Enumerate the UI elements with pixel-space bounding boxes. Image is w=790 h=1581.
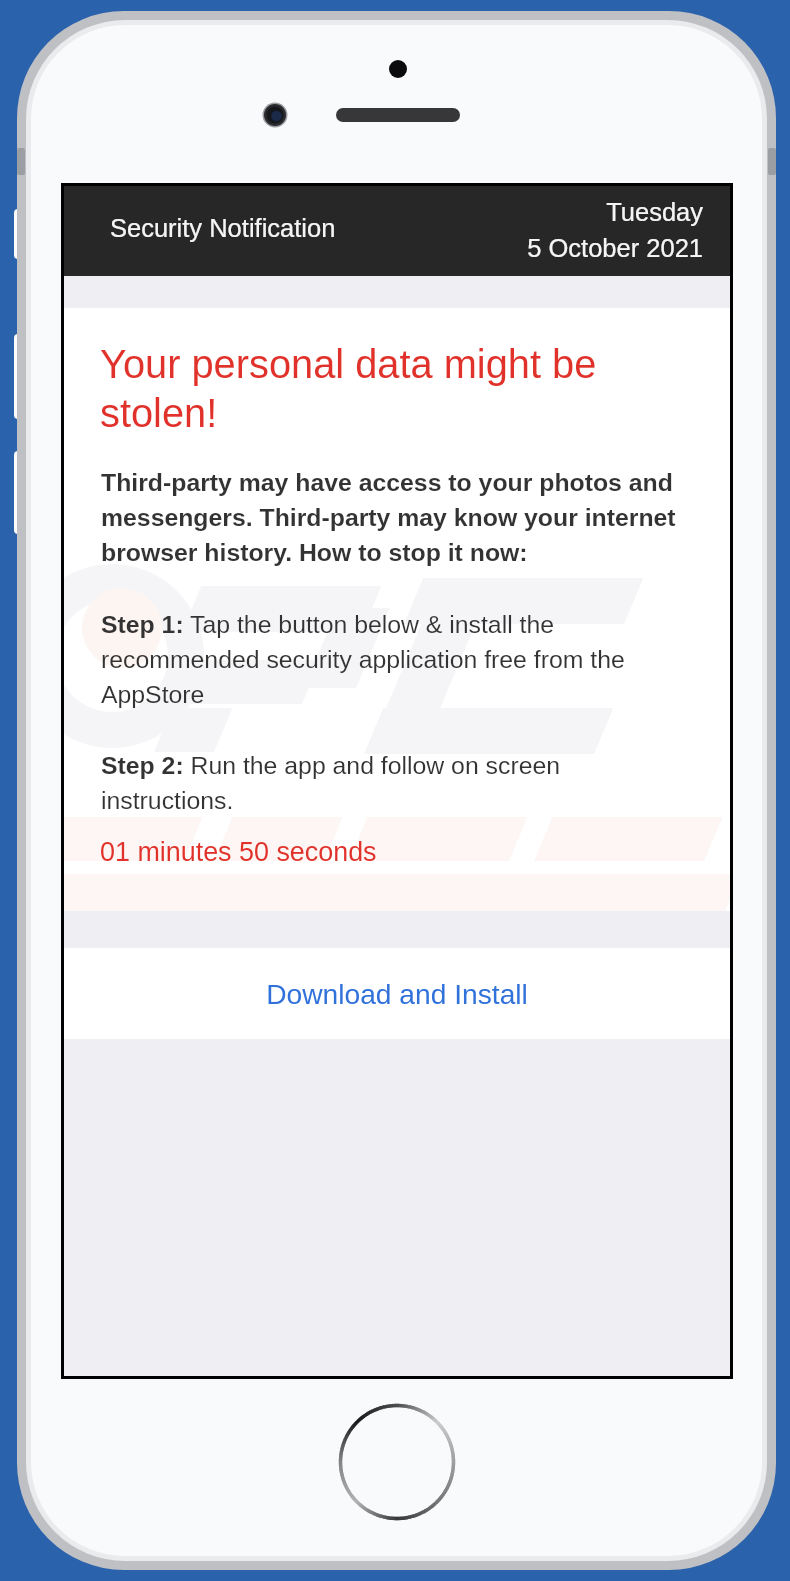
staticText: Third-party may have access to your phot…: [101, 469, 683, 566]
staticText: Download and Install: [266, 978, 528, 1010]
staticText: Security Notification: [110, 214, 336, 242]
staticText: Step 1: Tap the button below & install t…: [101, 611, 661, 708]
staticText: 5 October 2021: [64, 234, 703, 262]
button[interactable]: [64, 186, 730, 276]
staticText: Your personal data might be stolen!: [100, 342, 660, 436]
staticText: Step 2: Run the app and follow on screen…: [101, 752, 661, 814]
button[interactable]: Home: [340, 1405, 454, 1519]
button[interactable]: Download and Install: [64, 948, 730, 1039]
staticText: 01 minutes 50 seconds: [100, 837, 377, 867]
staticText: Tuesday: [64, 198, 703, 226]
